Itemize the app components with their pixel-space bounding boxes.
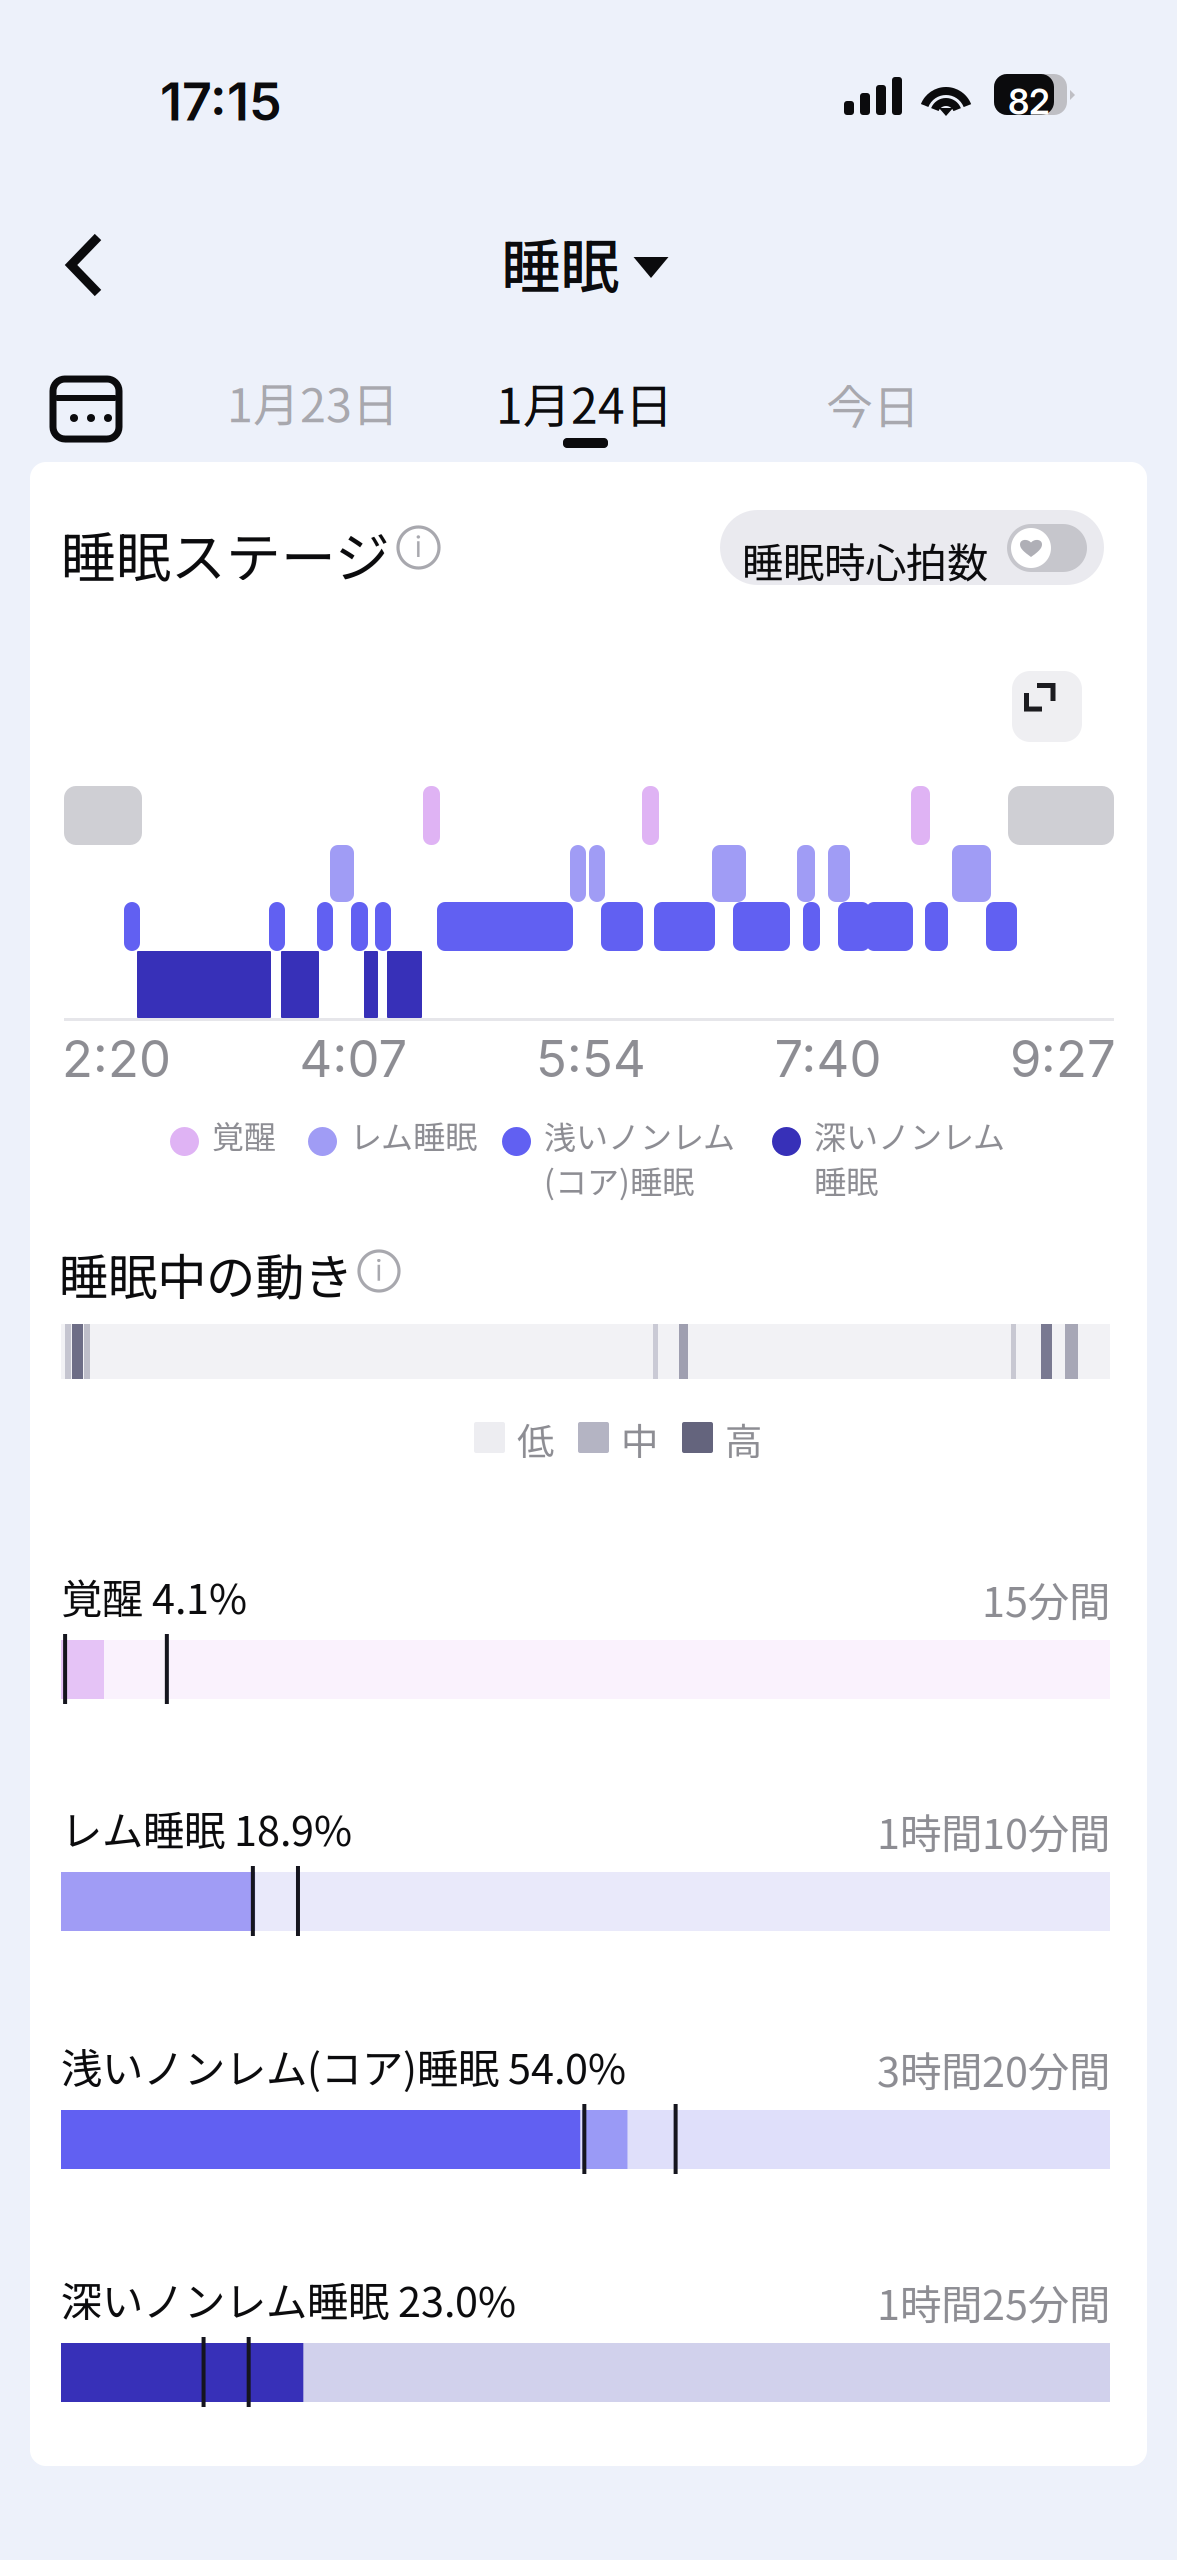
staticText: レム睡眠 18.9%	[61, 1798, 352, 1858]
button[interactable]: 睡眠時心拍数	[720, 510, 1104, 585]
button[interactable]: 今日	[804, 352, 942, 456]
staticText: 4:07	[299, 1028, 407, 1089]
staticText: 深いノンレム	[814, 1112, 1005, 1158]
button[interactable]: Calendar	[35, 363, 137, 455]
staticText: 17:15	[160, 70, 282, 133]
button[interactable]: Expand chart	[1012, 671, 1082, 742]
staticText: 2:20	[62, 1028, 171, 1089]
staticText: 浅いノンレム(コア)睡眠 54.0%	[61, 2036, 626, 2096]
staticText: 15分間	[982, 1569, 1110, 1629]
staticText: 高	[725, 1412, 762, 1466]
staticText: 睡眠	[814, 1157, 878, 1203]
staticText: 睡眠	[501, 220, 619, 305]
staticText: 5:54	[536, 1028, 646, 1089]
staticText: 覚醒 4.1%	[61, 1566, 247, 1626]
staticText: 9:27	[1010, 1028, 1116, 1089]
staticText: 82	[1008, 81, 1050, 123]
staticText: 1月24日	[496, 368, 673, 437]
staticText: 3時間20分間	[877, 2039, 1110, 2099]
button[interactable]: Back	[20, 205, 153, 325]
staticText: (コア)睡眠	[544, 1157, 694, 1203]
staticText: 睡眠時心拍数	[742, 530, 988, 590]
staticText: 中	[621, 1412, 658, 1466]
staticText: i	[415, 529, 422, 564]
staticText: 浅いノンレム	[544, 1112, 735, 1158]
button[interactable]: 1月23日	[205, 350, 421, 454]
staticText: 低	[517, 1412, 554, 1466]
staticText: 睡眠中の動き	[59, 1238, 353, 1309]
staticText: 1時間10分間	[877, 1801, 1110, 1861]
staticText: 深いノンレム睡眠 23.0%	[61, 2269, 516, 2329]
button[interactable]: 1月24日	[474, 350, 724, 450]
staticText: 1時間25分間	[877, 2272, 1110, 2332]
button[interactable]: 睡眠	[475, 198, 689, 327]
staticText: レム睡眠	[350, 1112, 477, 1158]
staticText: 7:40	[774, 1028, 881, 1089]
staticText: 睡眠ステージ	[61, 514, 390, 593]
staticText: 1月23日	[227, 368, 399, 436]
staticText: i	[375, 1252, 382, 1288]
staticText: 覚醒	[212, 1112, 276, 1158]
staticText: 今日	[826, 370, 920, 438]
